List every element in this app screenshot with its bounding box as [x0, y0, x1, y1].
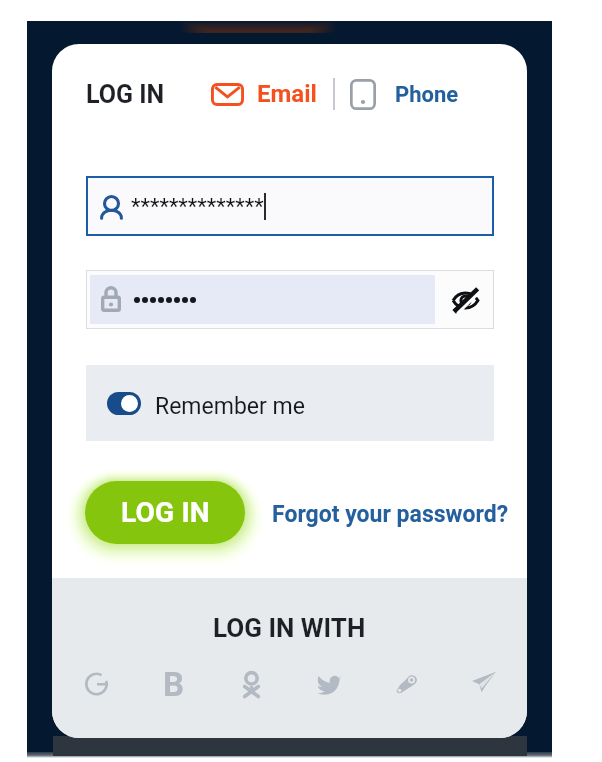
button[interactable]: Phone: [350, 79, 459, 110]
button[interactable]: [90, 275, 435, 324]
button[interactable]: Forgot your password?: [272, 501, 509, 528]
staticText: Phone: [395, 82, 459, 108]
button[interactable]: LOG IN: [85, 481, 245, 544]
button[interactable]: Sign in with Steam: [385, 663, 427, 705]
staticText: **************: [131, 194, 264, 220]
staticText: B: [163, 665, 185, 704]
staticText: Forgot your password?: [272, 501, 509, 528]
staticText: Email: [257, 80, 317, 108]
staticText: Remember me: [155, 393, 305, 420]
staticText: LOG IN: [86, 80, 165, 109]
button[interactable]: Sign in with Telegram: [463, 663, 505, 705]
button[interactable]: Sign in with Twitter: [308, 663, 350, 705]
staticText: LOG IN WITH: [213, 613, 366, 643]
staticText: LOG IN: [121, 496, 210, 529]
button[interactable]: Sign in with Odnoklassniki: [230, 663, 272, 705]
button[interactable]: Remember me: [86, 365, 494, 441]
button[interactable]: **************: [86, 176, 494, 236]
button[interactable]: Sign in with Google: [75, 663, 117, 705]
button[interactable]: Email: [211, 80, 317, 108]
button[interactable]: Sign in with VK: [153, 663, 195, 705]
button[interactable]: Show password: [436, 271, 494, 328]
